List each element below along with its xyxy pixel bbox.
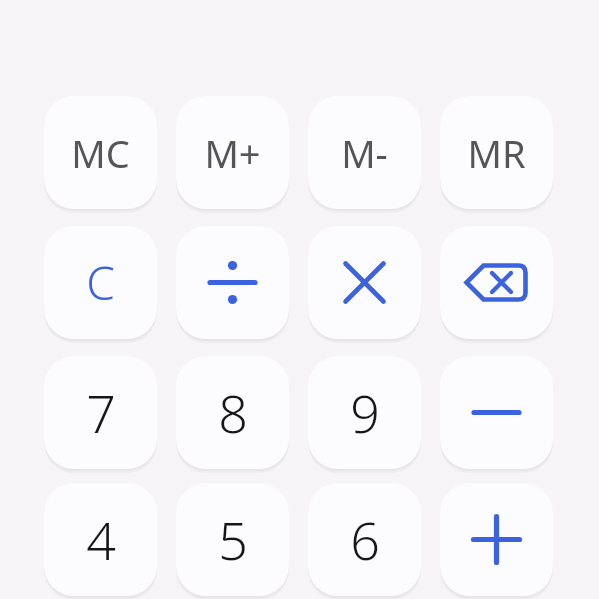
staticText: 5: [218, 504, 248, 575]
button[interactable]: Backspace: [440, 226, 553, 339]
button[interactable]: 8: [176, 356, 289, 469]
staticText: C: [86, 251, 115, 314]
button[interactable]: Clear: [44, 226, 157, 339]
button[interactable]: 7: [44, 356, 157, 469]
button[interactable]: M+: [176, 96, 289, 209]
button[interactable]: 6: [308, 483, 421, 596]
button[interactable]: Divide: [176, 226, 289, 339]
staticText: 7: [86, 377, 116, 448]
button[interactable]: Multiply: [308, 226, 421, 339]
button[interactable]: M-: [308, 96, 421, 209]
button[interactable]: 4: [44, 483, 157, 596]
button[interactable]: Plus: [440, 483, 553, 596]
button[interactable]: Minus: [440, 356, 553, 469]
button[interactable]: 5: [176, 483, 289, 596]
staticText: M-: [341, 127, 388, 179]
staticText: 9: [350, 377, 380, 448]
staticText: M+: [204, 127, 261, 179]
staticText: MR: [467, 127, 526, 179]
button[interactable]: 9: [308, 356, 421, 469]
staticText: 6: [350, 504, 380, 575]
staticText: MC: [71, 127, 130, 179]
button[interactable]: MR: [440, 96, 553, 209]
button[interactable]: MC: [44, 96, 157, 209]
staticText: 8: [218, 377, 248, 448]
staticText: 4: [86, 504, 116, 575]
